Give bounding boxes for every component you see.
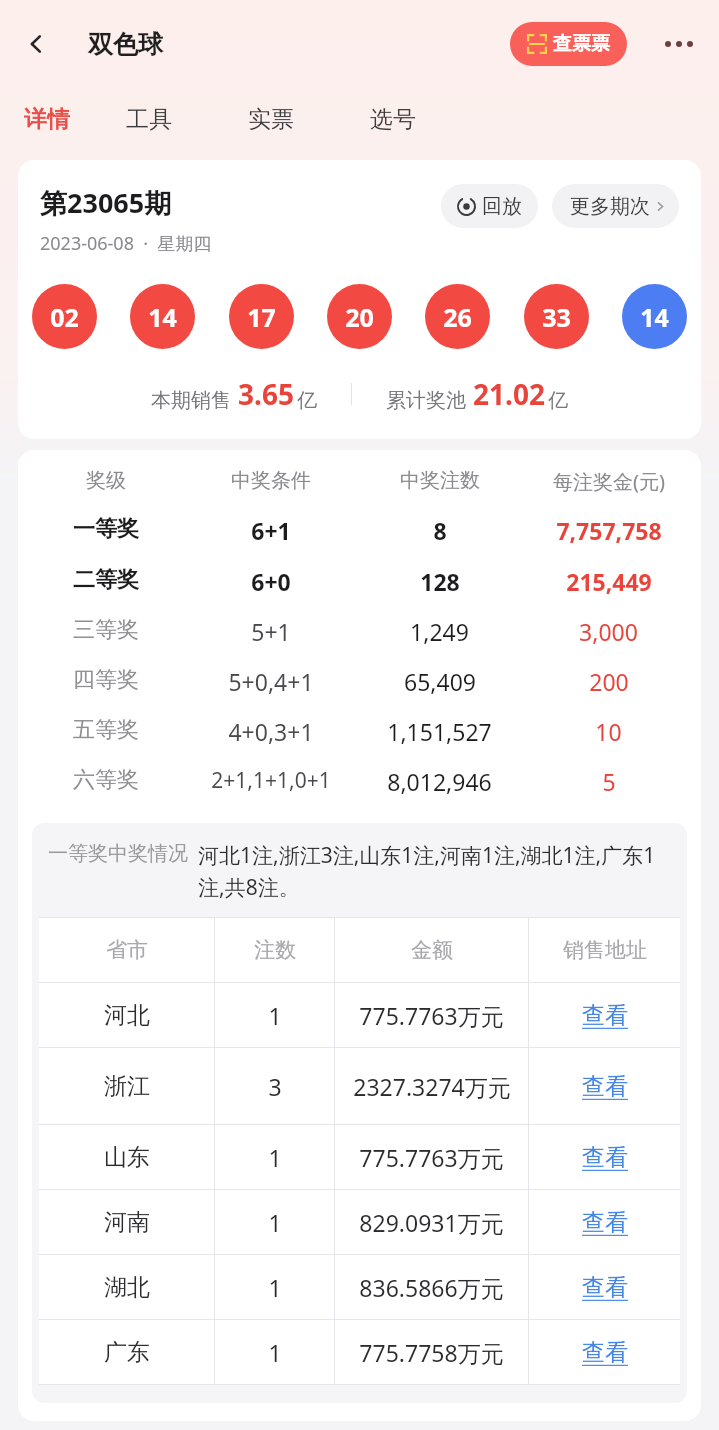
staticText: 20 (345, 300, 374, 334)
staticText: 775.7763万元 (359, 1000, 504, 1031)
staticText: 中奖注数 (400, 468, 480, 493)
staticText: 1 (268, 1000, 282, 1031)
staticText: 1 (268, 1337, 282, 1368)
staticText: 17 (247, 300, 276, 334)
staticText: 山东 (104, 1143, 150, 1172)
staticText: 第23065期 (40, 184, 172, 221)
button[interactable]: 选号 (370, 88, 492, 150)
staticText: 775.7758万元 (359, 1337, 504, 1368)
staticText: 查看 (582, 1338, 628, 1367)
button[interactable]: 工具 (126, 88, 248, 150)
button[interactable]: 更多期次 (552, 184, 679, 228)
staticText: 2327.3274万元 (353, 1071, 511, 1102)
staticText: 选号 (370, 105, 416, 134)
staticText: 829.0931万元 (359, 1207, 504, 1238)
staticText: 1 (268, 1207, 282, 1238)
staticText: 本期销售 (151, 388, 231, 413)
staticText: 8 (433, 515, 447, 546)
staticText: 工具 (126, 105, 172, 134)
staticText: 四等奖 (73, 666, 139, 694)
staticText: 六等奖 (73, 766, 139, 794)
button[interactable]: 查看 (529, 1048, 680, 1124)
staticText: 浙江 (104, 1072, 150, 1101)
staticText: 2023-06-08 · 星期四 (40, 231, 212, 256)
button[interactable]: 查看 (529, 1190, 680, 1254)
staticText: 实票 (248, 105, 294, 134)
staticText: 查看 (582, 1208, 628, 1237)
staticText: 一等奖中奖情况 (48, 841, 188, 866)
staticText: 33 (542, 300, 571, 334)
staticText: 河北1注,浙江3注,山东1注,河南1注,湖北1注,广东1注,共8注。 (198, 841, 671, 901)
staticText: 更多期次 (570, 194, 650, 219)
staticText: 5 (602, 766, 616, 797)
staticText: 金额 (411, 937, 453, 963)
staticText: 省市 (106, 937, 148, 963)
staticText: 查看 (582, 1072, 628, 1101)
staticText: 回放 (482, 194, 522, 219)
staticText: 1 (268, 1142, 282, 1173)
staticText: 查看 (582, 1273, 628, 1302)
staticText: 销售地址 (563, 937, 647, 963)
staticText: 8,012,946 (387, 766, 492, 797)
staticText: 14 (640, 300, 669, 334)
staticText: 02 (50, 300, 79, 334)
staticText: 4+0,3+1 (228, 716, 314, 747)
staticText: 3,000 (579, 616, 638, 647)
staticText: 累计奖池 (386, 388, 466, 413)
staticText: 10 (595, 716, 622, 747)
button[interactable]: 回放 (441, 184, 538, 228)
staticText: 双色球 (88, 29, 163, 60)
staticText: 1,249 (410, 616, 469, 647)
staticText: 详情 (24, 105, 70, 134)
staticText: 奖级 (86, 468, 126, 493)
staticText: 五等奖 (73, 716, 139, 744)
staticText: 775.7763万元 (359, 1142, 504, 1173)
staticText: 查票票 (553, 32, 610, 56)
staticText: 三等奖 (73, 616, 139, 644)
staticText: 5+1 (251, 616, 291, 647)
staticText: 中奖条件 (231, 468, 311, 493)
staticText: 每注奖金(元) (553, 468, 665, 495)
staticText: 7,757,758 (556, 515, 662, 546)
staticText: 836.5866万元 (359, 1272, 504, 1303)
staticText: 1,151,527 (387, 716, 492, 747)
staticText: 26 (443, 300, 472, 334)
staticText: 14 (148, 300, 177, 334)
staticText: 2+1,1+1,0+1 (211, 766, 331, 795)
staticText: 3 (268, 1071, 282, 1102)
button[interactable]: 查看 (529, 1320, 680, 1384)
staticText: 200 (589, 666, 629, 697)
staticText: 21.02 (473, 375, 545, 413)
button: 销售地址 (529, 918, 680, 982)
button[interactable]: 查看 (529, 1255, 680, 1319)
button[interactable]: 查看 (529, 1125, 680, 1189)
staticText: 查看 (582, 1143, 628, 1172)
staticText: 1 (268, 1272, 282, 1303)
staticText: 128 (420, 566, 460, 597)
button[interactable]: 实票 (248, 88, 370, 150)
staticText: 河南 (104, 1208, 150, 1237)
staticText: 二等奖 (73, 566, 139, 594)
button[interactable]: 详情 (24, 88, 126, 150)
button[interactable]: Back (8, 16, 64, 72)
staticText: 湖北 (104, 1273, 150, 1302)
staticText: 注数 (254, 937, 296, 963)
staticText: 亿 (297, 388, 317, 413)
staticText: 查看 (582, 1001, 628, 1030)
button[interactable]: 查票票 (510, 22, 627, 66)
button[interactable]: More options (651, 16, 707, 72)
staticText: 广东 (104, 1338, 150, 1367)
staticText: 65,409 (404, 666, 476, 697)
staticText: 3.65 (238, 375, 294, 413)
staticText: 6+0 (251, 566, 291, 597)
staticText: 5+0,4+1 (228, 666, 314, 697)
button[interactable]: 查看 (529, 983, 680, 1047)
staticText: 6+1 (251, 515, 291, 546)
staticText: 亿 (548, 388, 568, 413)
staticText: 河北 (104, 1001, 150, 1030)
staticText: 一等奖 (73, 515, 139, 543)
staticText: 215,449 (566, 566, 652, 597)
